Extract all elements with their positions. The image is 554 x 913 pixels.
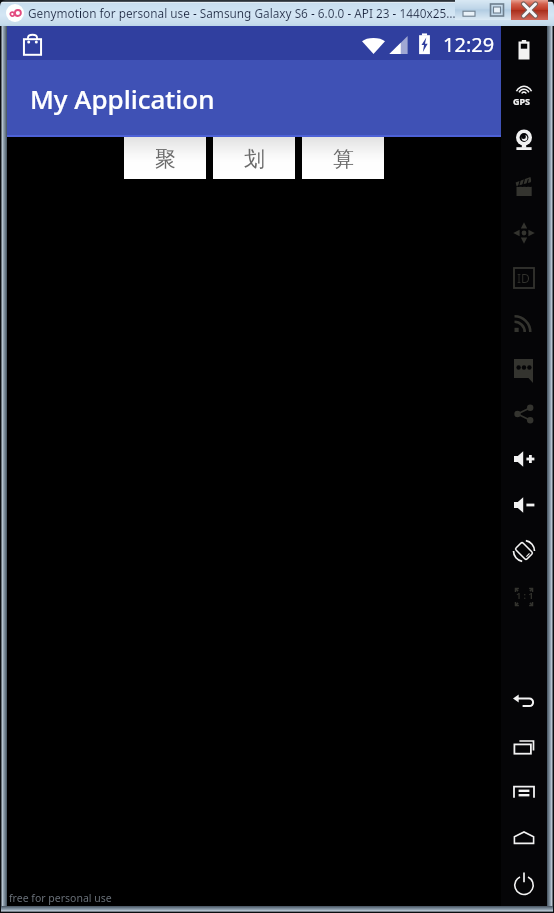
- button[interactable]: 算: [302, 137, 384, 179]
- staticText: GPS: [513, 95, 531, 107]
- staticText: 划: [244, 146, 265, 172]
- staticText: free for personal use: [9, 891, 112, 905]
- button[interactable]: Power: [512, 871, 536, 895]
- button[interactable]: Share: [512, 401, 536, 425]
- button[interactable]: Battery: [512, 37, 536, 61]
- button[interactable]: Network: [512, 310, 536, 334]
- button[interactable]: Minimize: [455, 0, 483, 20]
- button[interactable]: 划: [213, 137, 295, 179]
- button[interactable]: Camera: [512, 128, 536, 152]
- button[interactable]: Home: [512, 825, 536, 849]
- button[interactable]: Navigation pad: [512, 220, 536, 244]
- button[interactable]: Close: [511, 0, 548, 20]
- staticText: 聚: [155, 146, 176, 172]
- button[interactable]: Volume down: [512, 492, 536, 516]
- button[interactable]: Recent apps: [512, 734, 536, 758]
- button[interactable]: GPS: [512, 82, 536, 106]
- staticText: 算: [333, 146, 354, 172]
- button[interactable]: SMS: [512, 356, 536, 380]
- staticText: 1 : 1: [516, 589, 534, 601]
- button[interactable]: Screen recorder: [512, 174, 536, 198]
- button[interactable]: Rotate: [512, 538, 536, 562]
- staticText: Genymotion for personal use - Samsung Ga…: [28, 5, 456, 21]
- button[interactable]: Identifiers: [512, 265, 536, 289]
- button[interactable]: 聚: [124, 137, 206, 179]
- button[interactable]: Volume up: [512, 446, 536, 470]
- button[interactable]: Actual size: [512, 584, 536, 608]
- button[interactable]: Back: [512, 688, 536, 712]
- button[interactable]: Menu: [512, 779, 536, 803]
- staticText: ID: [517, 270, 530, 286]
- staticText: My Application: [30, 81, 215, 116]
- button[interactable]: Maximize: [483, 0, 511, 20]
- staticText: 12:29: [443, 31, 495, 58]
